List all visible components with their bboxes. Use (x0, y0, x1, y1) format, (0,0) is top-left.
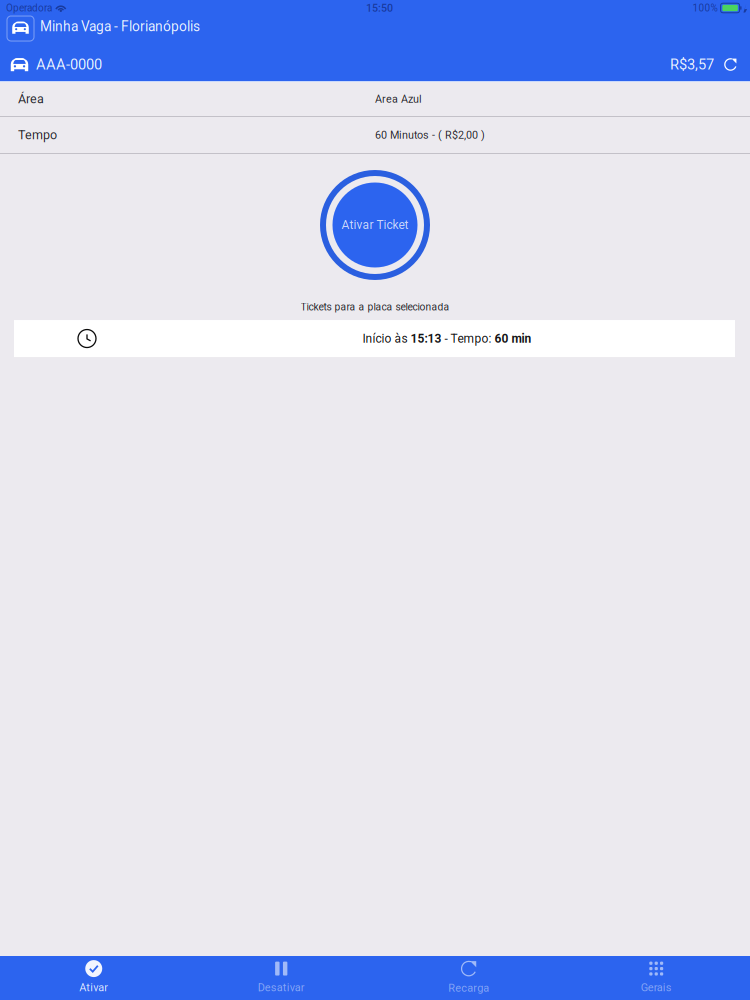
staticText: Ativar Ticket (341, 218, 408, 232)
staticText: Tempo (18, 128, 57, 142)
staticText: Minha Vaga - Florianópolis (40, 18, 200, 35)
staticText: Tickets para a placa selecionada (300, 301, 449, 313)
staticText: Desativar (258, 981, 305, 994)
button[interactable]: Ativar Ticket (320, 170, 430, 280)
staticText: Recarga (448, 982, 489, 994)
staticText: - Tempo: (441, 331, 494, 346)
button[interactable]: Desativar (187, 956, 375, 1000)
staticText: AAA-0000 (36, 56, 102, 73)
staticText: R$3,57 (670, 56, 714, 73)
staticText: Ativar (79, 981, 108, 994)
button[interactable]: Início às (14, 320, 735, 357)
staticText: Início às (362, 331, 410, 346)
staticText: Operadora (6, 2, 52, 14)
staticText: 60 Minutos - ( R$2,00 ) (375, 129, 485, 141)
staticText: Área (18, 92, 44, 106)
button[interactable]: Veículo (7, 16, 34, 41)
staticText: 60 min (494, 331, 531, 346)
staticText: 15:50 (366, 2, 393, 14)
button[interactable]: Recarga (375, 956, 562, 1000)
button[interactable]: Ativar (0, 956, 187, 1000)
staticText: Area Azul (375, 93, 422, 105)
staticText: 100% (693, 2, 718, 14)
staticText: 15:13 (410, 331, 441, 346)
button[interactable]: Atualizar saldo (662, 50, 750, 78)
button[interactable]: Gerais (562, 956, 750, 1000)
staticText: Gerais (641, 981, 672, 994)
